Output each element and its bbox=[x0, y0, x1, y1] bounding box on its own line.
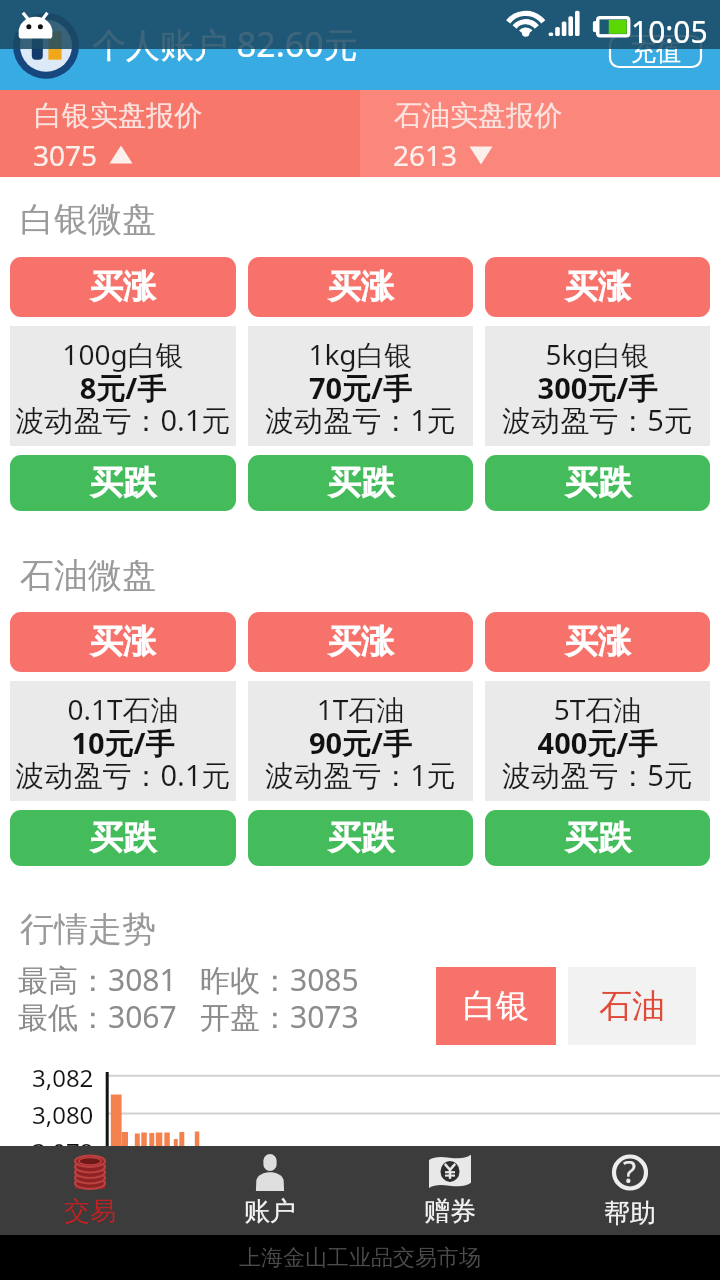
staticText: 行情走势 bbox=[20, 908, 156, 951]
button[interactable]: 账户 bbox=[180, 1146, 360, 1235]
staticText: 充值 bbox=[631, 36, 681, 67]
staticText: 10元/手 bbox=[10, 723, 236, 763]
staticText: 买跌 bbox=[328, 462, 394, 504]
staticText: 赠券 bbox=[424, 1195, 476, 1228]
staticText: 买涨 bbox=[565, 266, 631, 308]
button[interactable]: 买跌 bbox=[10, 455, 236, 511]
button[interactable]: 买跌 bbox=[485, 455, 710, 511]
staticText: 波动盈亏：5元 bbox=[485, 755, 710, 795]
staticText: 账户 bbox=[244, 1195, 296, 1228]
staticText: 波动盈亏：5元 bbox=[485, 400, 710, 440]
staticText: 波动盈亏：1元 bbox=[248, 400, 473, 440]
button[interactable]: 买涨 bbox=[10, 612, 236, 672]
staticText: 90元/手 bbox=[248, 723, 473, 763]
staticText: 100g白银 bbox=[10, 335, 236, 373]
staticText: 最高：3081 昨收：3085 bbox=[18, 959, 359, 1000]
staticText: 买涨 bbox=[90, 621, 156, 663]
staticText: 交易 bbox=[64, 1195, 116, 1228]
staticText: 5kg白银 bbox=[485, 335, 710, 373]
staticText: 3,080 bbox=[32, 1098, 94, 1131]
staticText: 买跌 bbox=[565, 817, 631, 859]
button[interactable]: 充值 bbox=[609, 35, 702, 68]
staticText: ? bbox=[623, 1151, 637, 1192]
staticText: 10:05 bbox=[631, 11, 708, 52]
staticText: 买涨 bbox=[90, 266, 156, 308]
button[interactable]: 白银 bbox=[436, 967, 556, 1045]
staticText: 买涨 bbox=[565, 621, 631, 663]
button[interactable]: 交易 bbox=[0, 1146, 180, 1235]
button[interactable]: 买跌 bbox=[248, 810, 473, 866]
staticText: 石油微盘 bbox=[20, 554, 156, 597]
staticText: 0.1T石油 bbox=[10, 690, 236, 728]
button[interactable]: 买涨 bbox=[10, 257, 236, 317]
button[interactable]: 买跌 bbox=[485, 810, 710, 866]
button[interactable]: 赠券 bbox=[360, 1146, 540, 1235]
staticText: 石油 bbox=[599, 985, 665, 1027]
staticText: 上海金山工业品交易市场 bbox=[239, 1244, 481, 1272]
staticText: 白银实盘报价 bbox=[34, 98, 202, 133]
staticText: 最低：3067 开盘：3073 bbox=[18, 996, 359, 1037]
staticText: 3075 bbox=[33, 136, 98, 174]
staticText: 买涨 bbox=[328, 266, 394, 308]
button[interactable]: 石油实盘报价 bbox=[360, 90, 720, 177]
staticText: 波动盈亏：1元 bbox=[248, 755, 473, 795]
staticText: 70元/手 bbox=[248, 368, 473, 408]
staticText: 1kg白银 bbox=[248, 335, 473, 373]
staticText: 买跌 bbox=[90, 462, 156, 504]
staticText: 白银 bbox=[463, 985, 529, 1027]
button[interactable]: ? bbox=[540, 1146, 720, 1235]
button[interactable]: 买涨 bbox=[485, 257, 710, 317]
staticText: 个人账户 82.60元 bbox=[92, 21, 358, 67]
staticText: 买跌 bbox=[565, 462, 631, 504]
button[interactable]: 白银实盘报价 bbox=[0, 90, 360, 177]
button[interactable]: 买涨 bbox=[485, 612, 710, 672]
staticText: 3,078 bbox=[32, 1135, 94, 1168]
staticText: 石油实盘报价 bbox=[394, 98, 562, 133]
button[interactable]: 买跌 bbox=[10, 810, 236, 866]
staticText: 白银微盘 bbox=[20, 198, 156, 241]
button[interactable]: 买涨 bbox=[248, 257, 473, 317]
staticText: 买涨 bbox=[328, 621, 394, 663]
staticText: 3,082 bbox=[32, 1061, 94, 1094]
button[interactable]: 石油 bbox=[568, 967, 696, 1045]
staticText: 300元/手 bbox=[485, 368, 710, 408]
button[interactable]: 买涨 bbox=[248, 612, 473, 672]
staticText: 买跌 bbox=[328, 817, 394, 859]
staticText: 买跌 bbox=[90, 817, 156, 859]
staticText: 帮助 bbox=[604, 1197, 656, 1230]
staticText: 波动盈亏：0.1元 bbox=[10, 400, 236, 440]
staticText: 5T石油 bbox=[485, 690, 710, 728]
staticText: 400元/手 bbox=[485, 723, 710, 763]
staticText: 8元/手 bbox=[10, 368, 236, 408]
button[interactable]: 买跌 bbox=[248, 455, 473, 511]
staticText: 波动盈亏：0.1元 bbox=[10, 755, 236, 795]
staticText: 2613 bbox=[393, 136, 458, 174]
staticText: 1T石油 bbox=[248, 690, 473, 728]
